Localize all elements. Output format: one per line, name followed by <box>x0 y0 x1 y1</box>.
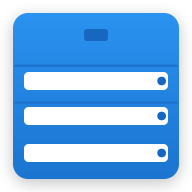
button[interactable]: Field row <box>24 107 168 125</box>
button[interactable]: Field row <box>24 72 168 90</box>
button[interactable]: Field row <box>24 144 168 162</box>
button[interactable]: Handle <box>84 29 108 41</box>
